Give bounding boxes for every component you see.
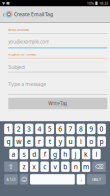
staticText: Create Email Tag <box>14 11 53 18</box>
button[interactable]: 6 <box>56 124 64 134</box>
button[interactable]: 5 <box>46 124 54 134</box>
button[interactable]: n <box>71 161 80 172</box>
staticText: y <box>59 137 62 146</box>
button[interactable]: o <box>87 136 95 147</box>
button[interactable]: p <box>97 136 106 147</box>
staticText: f <box>44 150 46 159</box>
button[interactable]: b <box>61 161 70 172</box>
staticText: 7 <box>68 124 72 133</box>
staticText: 10% <box>87 0 94 6</box>
button[interactable]: 3 <box>25 124 33 134</box>
button[interactable]: c <box>40 161 49 172</box>
staticText: 4 <box>37 124 41 133</box>
button[interactable]: l <box>92 149 101 159</box>
staticText: r <box>38 137 41 146</box>
staticText: n <box>74 162 78 171</box>
staticText: a <box>12 150 16 159</box>
staticText: . <box>80 176 81 183</box>
staticText: ▼ <box>2 1 5 6</box>
staticText: k <box>84 150 88 159</box>
staticText: h <box>63 150 67 159</box>
button[interactable]: Return <box>87 174 106 184</box>
staticText: 1 <box>6 124 10 133</box>
button[interactable]: Back <box>1 7 5 21</box>
button[interactable]: t <box>46 136 54 147</box>
staticText: ⇧ <box>8 163 14 171</box>
button[interactable]: 4 <box>35 124 44 134</box>
button[interactable]: g <box>51 149 59 159</box>
button[interactable]: d <box>30 149 38 159</box>
button[interactable]: 2 <box>14 124 23 134</box>
button[interactable]: m <box>82 161 90 172</box>
staticText: 18:33 <box>99 0 108 6</box>
staticText: o <box>89 137 93 146</box>
staticText: j <box>75 150 77 159</box>
staticText: Type a message <box>8 81 46 87</box>
staticText: q <box>6 137 10 146</box>
button[interactable]: 8 <box>77 124 85 134</box>
staticText: t <box>49 137 51 146</box>
staticText: i <box>80 137 82 146</box>
staticText: u <box>68 137 72 146</box>
button[interactable]: v <box>51 161 59 172</box>
button[interactable]: w <box>14 136 23 147</box>
button[interactable]: s <box>20 149 28 159</box>
staticText: v <box>53 162 56 171</box>
staticText: MESSAGE (OPTIONAL) <box>8 53 36 56</box>
staticText: m <box>83 162 89 171</box>
staticText: w <box>16 137 21 146</box>
button[interactable]: j <box>71 149 80 159</box>
button[interactable]: . <box>77 174 85 184</box>
button[interactable]: r <box>35 136 44 147</box>
staticText: DAILY <box>92 177 101 182</box>
staticText: 0 <box>100 124 104 133</box>
button[interactable]: a <box>9 149 18 159</box>
staticText: x <box>32 162 36 171</box>
button[interactable]: u <box>66 136 75 147</box>
staticText: 5 <box>48 124 52 133</box>
button[interactable]: 0 <box>97 124 106 134</box>
staticText: d <box>32 150 36 159</box>
button[interactable]: x <box>30 161 38 172</box>
staticText: 6 <box>58 124 62 133</box>
staticText: b <box>63 162 67 171</box>
button[interactable]: Shift <box>4 161 18 172</box>
staticText: 2 <box>17 124 21 133</box>
staticText: EMAIL ADDRESS <box>8 28 28 32</box>
staticText: p <box>100 137 104 146</box>
button[interactable]: k <box>82 149 90 159</box>
staticText: Write Tag <box>48 100 67 106</box>
staticText: s <box>22 150 25 159</box>
staticText: l <box>95 150 97 159</box>
button[interactable]: Write Tag <box>8 98 107 109</box>
staticText: Subject <box>8 63 25 70</box>
staticText: ‹ <box>2 9 4 20</box>
button[interactable]: Delete <box>92 161 106 172</box>
button[interactable]: e <box>25 136 33 147</box>
staticText: &123 <box>6 177 15 182</box>
staticText: you@example.com <box>8 38 49 45</box>
staticText: 3 <box>27 124 31 133</box>
staticText: e <box>27 137 31 146</box>
staticText: 8 <box>79 124 83 133</box>
button[interactable]: Space <box>30 174 75 184</box>
button[interactable]: 7 <box>66 124 75 134</box>
button[interactable]: f <box>40 149 49 159</box>
button[interactable]: 9 <box>87 124 95 134</box>
button[interactable]: Emoji <box>20 174 28 184</box>
button[interactable]: q <box>4 136 13 147</box>
staticText: ☺ <box>21 176 27 183</box>
button[interactable]: y <box>56 136 64 147</box>
button[interactable]: i <box>77 136 85 147</box>
button[interactable]: z <box>20 161 28 172</box>
staticText: ⌫ <box>95 163 103 170</box>
staticText: 9 <box>89 124 93 133</box>
button[interactable]: 1 <box>4 124 13 134</box>
staticText: g <box>53 150 57 159</box>
staticText: z <box>22 162 25 171</box>
button[interactable]: Numbers <box>4 174 18 184</box>
staticText: c <box>43 162 46 171</box>
button[interactable]: h <box>61 149 70 159</box>
